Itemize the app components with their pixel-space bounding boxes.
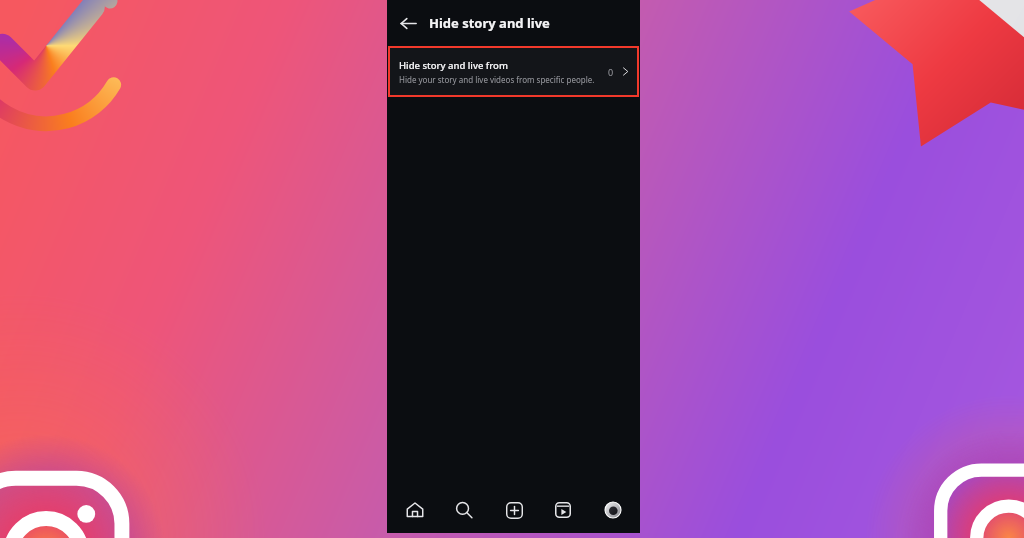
staticText: Hide story and live [429, 14, 550, 32]
button[interactable]: Search [442, 487, 486, 533]
staticText: Hide your story and live videos from spe… [399, 74, 595, 85]
staticText: 0 [608, 66, 614, 78]
button[interactable]: Home [393, 487, 437, 533]
button[interactable]: Profile [591, 487, 635, 533]
staticText: Hide story and live from [399, 59, 508, 72]
button[interactable]: Back [387, 2, 429, 44]
button[interactable]: Reels [541, 487, 585, 533]
button[interactable]: Hide story and live from [390, 48, 637, 95]
button[interactable]: Create [492, 487, 536, 533]
